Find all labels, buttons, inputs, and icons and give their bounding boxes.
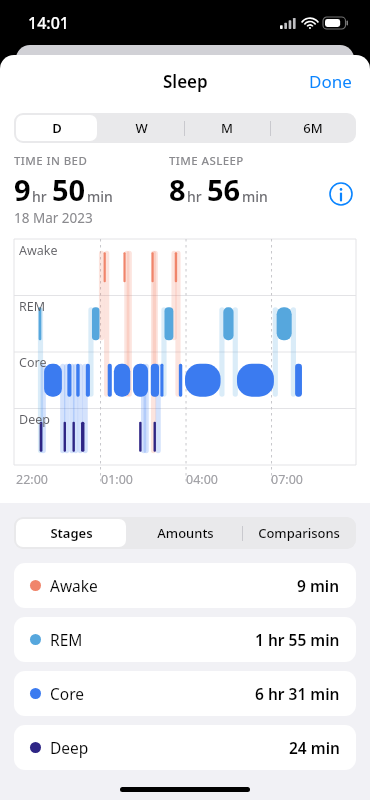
staticText: 9 bbox=[14, 170, 31, 209]
staticText: Awake bbox=[19, 242, 58, 259]
staticText: hr bbox=[187, 187, 202, 206]
button[interactable]: M bbox=[184, 113, 270, 143]
staticText: Deep bbox=[19, 411, 50, 428]
button[interactable]: 6M bbox=[270, 113, 356, 143]
staticText: 04:00 bbox=[186, 471, 218, 488]
staticText: min bbox=[87, 187, 113, 206]
button[interactable]: Done bbox=[291, 60, 370, 103]
staticText: M bbox=[221, 119, 233, 137]
staticText: W bbox=[135, 119, 148, 137]
staticText: Done bbox=[309, 70, 352, 93]
staticText: 1 hr 55 min bbox=[255, 629, 340, 650]
staticText: hr bbox=[32, 187, 47, 206]
button[interactable]: Comparisons bbox=[242, 517, 356, 549]
staticText: Stages bbox=[50, 524, 93, 542]
staticText: Core bbox=[19, 354, 47, 371]
staticText: 18 Mar 2023 bbox=[14, 209, 93, 227]
staticText: 6M bbox=[303, 119, 323, 137]
staticText: 8 bbox=[169, 170, 186, 209]
staticText: 56 bbox=[207, 170, 241, 209]
staticText: Deep bbox=[50, 737, 89, 758]
staticText: TIME ASLEEP bbox=[169, 153, 244, 169]
button[interactable]: W bbox=[99, 113, 184, 143]
staticText: 14:01 bbox=[28, 12, 69, 34]
staticText: 6 hr 31 min bbox=[255, 683, 340, 704]
staticText: 22:00 bbox=[16, 471, 48, 488]
staticText: Core bbox=[50, 683, 85, 704]
staticText: Amounts bbox=[157, 524, 214, 542]
staticText: 50 bbox=[52, 170, 86, 209]
staticText: 01:00 bbox=[101, 471, 133, 488]
button[interactable]: Amounts bbox=[128, 517, 242, 549]
button[interactable]: Awake bbox=[14, 563, 356, 608]
staticText: Comparisons bbox=[258, 524, 340, 542]
staticText: Sleep bbox=[163, 70, 208, 93]
staticText: TIME IN BED bbox=[14, 153, 88, 169]
staticText: 24 min bbox=[289, 737, 340, 758]
button[interactable]: About sleep stages bbox=[326, 179, 356, 209]
staticText: D bbox=[52, 119, 62, 137]
staticText: REM bbox=[50, 629, 83, 650]
staticText: REM bbox=[19, 298, 46, 315]
staticText: Awake bbox=[50, 575, 98, 596]
staticText: 9 min bbox=[297, 575, 340, 596]
staticText: min bbox=[242, 187, 268, 206]
button[interactable]: Stages bbox=[14, 517, 128, 549]
button[interactable]: D bbox=[14, 113, 99, 143]
button[interactable]: Deep bbox=[14, 725, 356, 770]
button[interactable]: Core bbox=[14, 671, 356, 716]
button[interactable]: REM bbox=[14, 617, 356, 662]
staticText: 07:00 bbox=[271, 471, 303, 488]
